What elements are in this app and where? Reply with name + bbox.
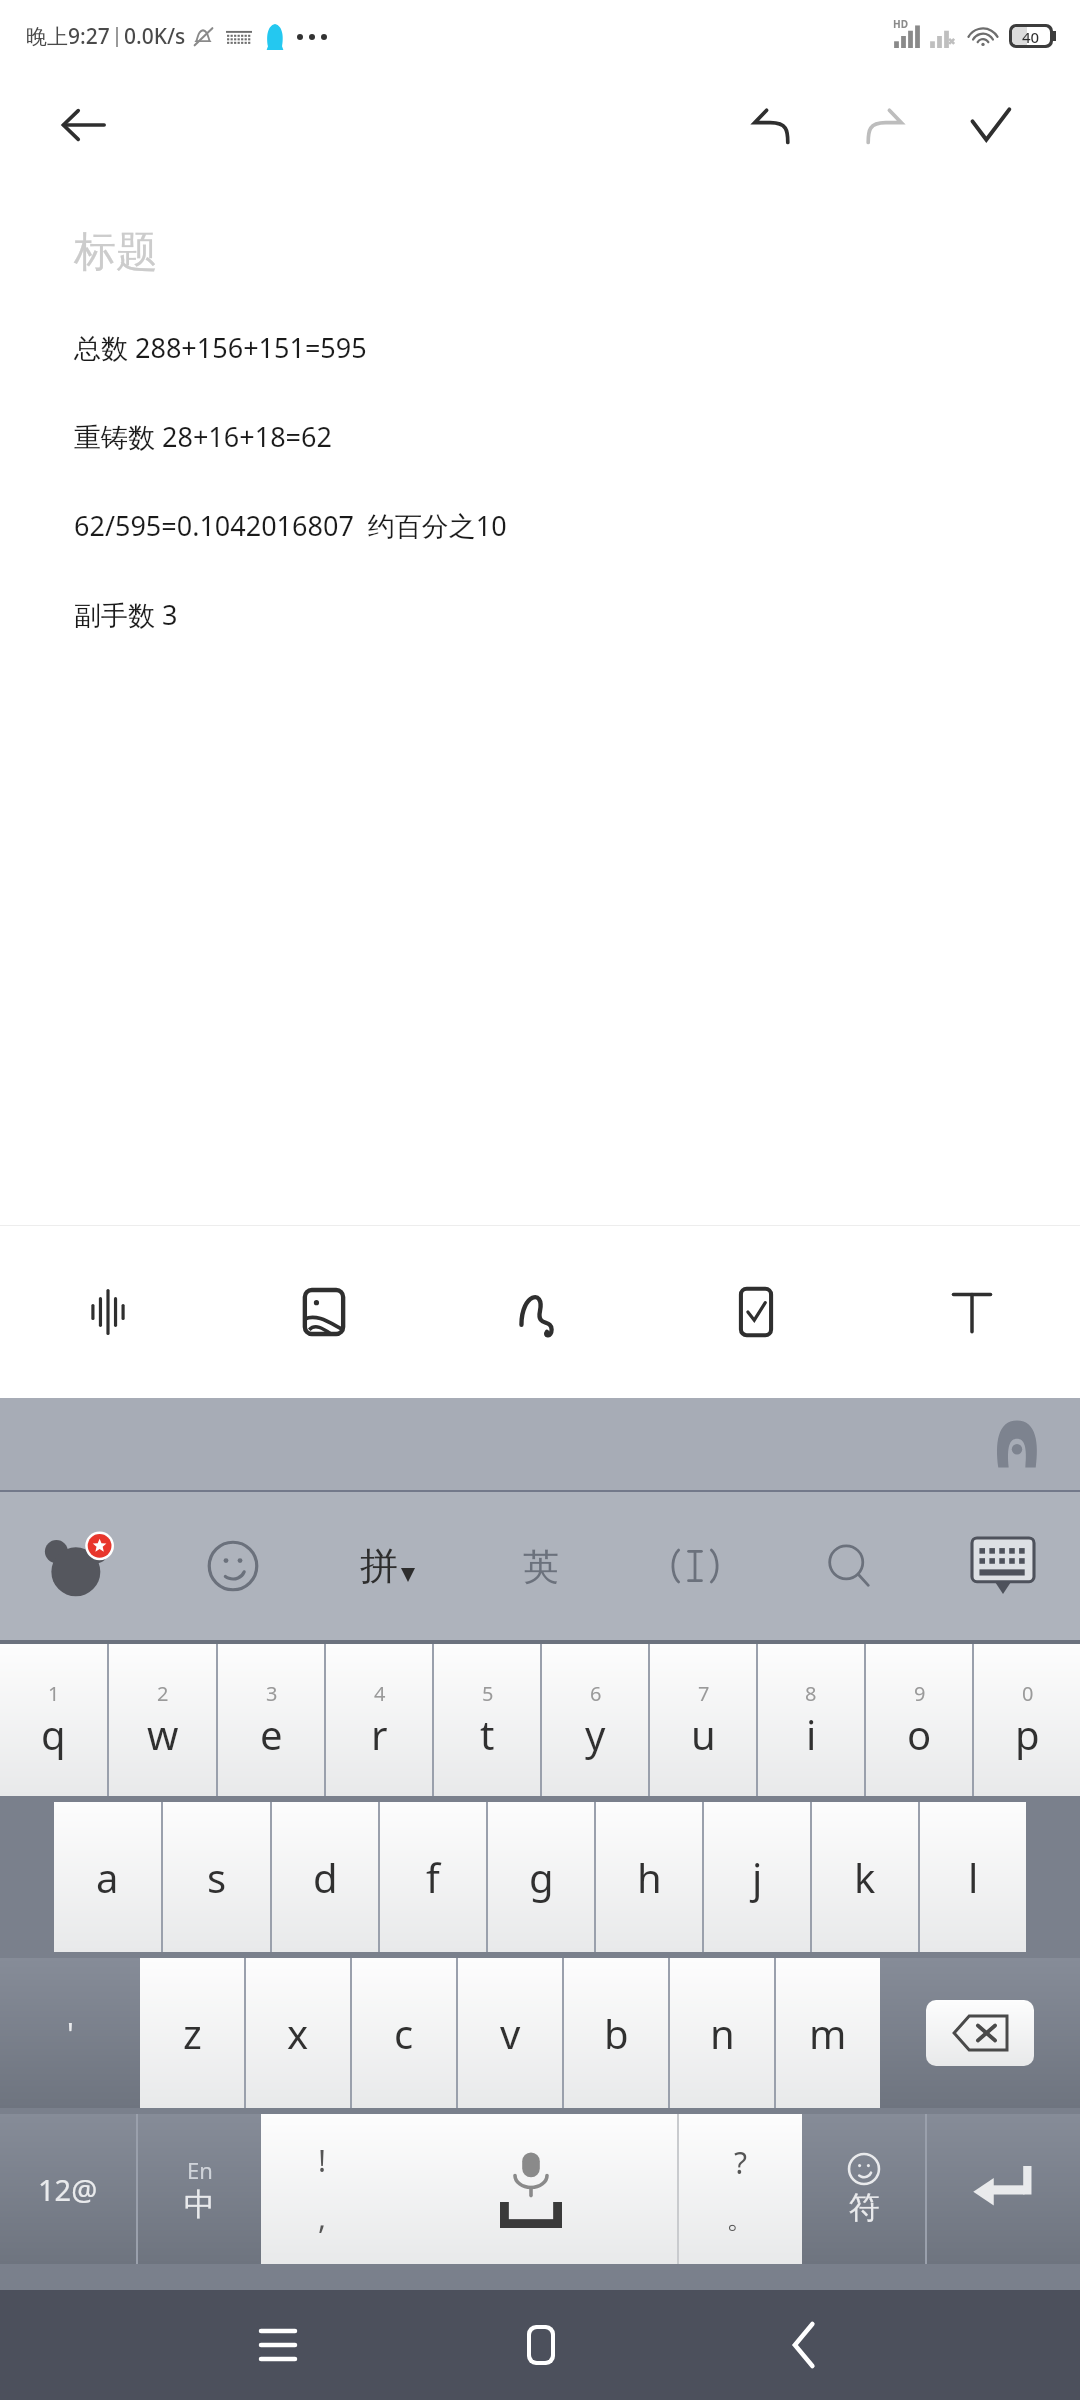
button[interactable]: m xyxy=(776,1958,880,2108)
button[interactable]: Switch language xyxy=(138,2114,261,2264)
button[interactable]: Pinyin xyxy=(310,1492,464,1640)
button[interactable]: g xyxy=(488,1802,594,1952)
button[interactable]: 1 xyxy=(0,1644,107,1796)
staticText: 0.0K/s xyxy=(124,22,186,51)
staticText: HD xyxy=(893,17,908,31)
button[interactable]: d xyxy=(272,1802,378,1952)
button[interactable]: n xyxy=(670,1958,774,2108)
button[interactable]: Home xyxy=(409,2290,672,2400)
staticText: ? xyxy=(734,2142,748,2183)
button[interactable]: z xyxy=(140,1958,244,2108)
staticText: z xyxy=(183,2006,202,2060)
button[interactable]: j xyxy=(704,1802,810,1952)
staticText: f xyxy=(426,1850,440,1904)
staticText: y xyxy=(585,1707,606,1761)
staticText: ! xyxy=(318,2140,327,2181)
staticText: d xyxy=(313,1850,338,1904)
staticText: r xyxy=(371,1707,388,1761)
button[interactable]: Shift xyxy=(0,1958,140,2108)
button[interactable]: Undo xyxy=(736,87,812,163)
button[interactable]: b xyxy=(564,1958,668,2108)
button[interactable]: x xyxy=(246,1958,350,2108)
button[interactable]: f xyxy=(380,1802,486,1952)
staticText: p xyxy=(1015,1707,1040,1761)
staticText: s xyxy=(207,1850,227,1904)
staticText: g xyxy=(529,1850,554,1904)
button[interactable]: Enter xyxy=(927,2114,1080,2264)
button[interactable]: 9 xyxy=(866,1644,972,1796)
button[interactable]: Back xyxy=(48,89,120,161)
staticText: k xyxy=(854,1850,876,1904)
staticText: b xyxy=(604,2006,629,2060)
button[interactable]: Assistant xyxy=(982,1409,1052,1479)
button[interactable]: Back xyxy=(672,2290,935,2400)
button[interactable]: ! xyxy=(261,2114,384,2264)
button[interactable]: Image xyxy=(216,1226,432,1398)
staticText: t xyxy=(480,1707,495,1761)
button[interactable]: Numbers and symbols xyxy=(0,2114,136,2264)
button[interactable]: a xyxy=(54,1802,161,1952)
staticText: i xyxy=(806,1707,817,1761)
button[interactable]: Cursor xyxy=(618,1492,772,1640)
staticText: ' xyxy=(67,2013,74,2054)
button[interactable]: 3 xyxy=(218,1644,324,1796)
button[interactable]: Keyboard layout xyxy=(926,1492,1080,1640)
button[interactable]: Voice xyxy=(0,1226,216,1398)
button[interactable]: 2 xyxy=(109,1644,216,1796)
button[interactable]: v xyxy=(458,1958,562,2108)
staticText: 副手数 3 xyxy=(74,596,178,633)
button[interactable]: 5 xyxy=(434,1644,540,1796)
staticText: 标题 xyxy=(74,226,158,279)
button[interactable]: Text style xyxy=(864,1226,1080,1398)
staticText: o xyxy=(907,1707,932,1761)
button[interactable]: s xyxy=(163,1802,270,1952)
button[interactable]: c xyxy=(352,1958,456,2108)
staticText: 重铸数 28+16+18=62 xyxy=(74,418,332,455)
staticText: n xyxy=(710,2006,735,2060)
button[interactable]: Symbols xyxy=(802,2114,925,2264)
staticText: 8 xyxy=(805,1680,817,1707)
button[interactable]: 0 xyxy=(974,1644,1080,1796)
button[interactable]: l xyxy=(920,1802,1026,1952)
button[interactable]: 4 xyxy=(326,1644,432,1796)
staticText: 9 xyxy=(914,1680,926,1707)
staticText: e xyxy=(260,1707,283,1761)
button[interactable]: k xyxy=(812,1802,918,1952)
staticText: , xyxy=(318,2197,327,2238)
staticText: 1 xyxy=(48,1680,60,1707)
staticText: 62/595=0.1042016807 约百分之10 xyxy=(74,507,507,544)
button[interactable]: Search xyxy=(772,1492,926,1640)
button[interactable]: Emoji xyxy=(155,1492,310,1640)
staticText: 2 xyxy=(157,1680,169,1707)
button[interactable]: Handwriting xyxy=(432,1226,648,1398)
button[interactable]: English xyxy=(464,1492,618,1640)
staticText: 拼 xyxy=(360,1542,398,1590)
button[interactable]: Checklist xyxy=(648,1226,864,1398)
staticText: l xyxy=(968,1850,979,1904)
staticText: x xyxy=(287,2006,309,2060)
button[interactable]: Backspace xyxy=(880,1958,1080,2108)
button[interactable]: Space xyxy=(384,2114,677,2264)
staticText: 0 xyxy=(1022,1680,1034,1707)
button[interactable]: Done xyxy=(952,87,1028,163)
button[interactable]: 7 xyxy=(650,1644,756,1796)
button[interactable]: ? xyxy=(679,2114,802,2264)
button[interactable]: Redo xyxy=(844,87,920,163)
button[interactable]: 8 xyxy=(758,1644,864,1796)
button[interactable]: Recents xyxy=(146,2290,409,2400)
staticText: 英 xyxy=(523,1544,559,1589)
staticText: c xyxy=(394,2006,414,2060)
staticText: m xyxy=(809,2006,847,2060)
staticText: 12@ xyxy=(38,2170,98,2209)
staticText: 晚上9:27 xyxy=(26,22,110,51)
button[interactable]: h xyxy=(596,1802,702,1952)
staticText: 总数 288+156+151=595 xyxy=(74,329,367,366)
button[interactable]: 6 xyxy=(542,1644,648,1796)
staticText: 中 xyxy=(184,2185,215,2224)
staticText: 符 xyxy=(849,2188,880,2227)
button[interactable]: Baidu IME xyxy=(0,1492,155,1640)
staticText: 。 xyxy=(726,2199,756,2237)
staticText: w xyxy=(147,1707,179,1761)
staticText: 40 xyxy=(1022,27,1040,45)
staticText: q xyxy=(41,1707,66,1761)
